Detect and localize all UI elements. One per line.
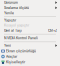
staticText: Sıralama ölçütü	[4, 6, 29, 10]
button[interactable]: NVIDIA Kontrol Paneli	[0, 35, 60, 41]
button[interactable]: Kişiselleştir	[0, 59, 60, 65]
staticText: Geri al Taşı	[4, 29, 22, 33]
staticText: Araçlar	[6, 54, 17, 58]
staticText: Görünüm	[4, 1, 18, 5]
button[interactable]: Yenile	[0, 10, 60, 16]
button[interactable]: Araçlar	[0, 54, 60, 59]
button[interactable]: Sıralama ölçütü	[0, 5, 60, 10]
staticText: Kişiselleştir	[6, 60, 25, 64]
staticText: Yapıştır	[4, 18, 16, 22]
staticText: Ekran çözünürlüğü	[6, 49, 36, 53]
staticText: Kısayol yapıştır	[4, 23, 29, 27]
button[interactable]: Yapıştır	[0, 18, 60, 23]
button[interactable]: Geri al Taşı	[0, 28, 60, 33]
staticText: NVIDIA Kontrol Paneli	[4, 36, 38, 40]
button[interactable]: Kısayol yapıştır	[0, 23, 60, 28]
button[interactable]: Görünüm	[0, 0, 60, 5]
staticText: Yeni	[4, 43, 11, 47]
staticText: Yenile	[4, 11, 14, 15]
button[interactable]: Yeni	[0, 43, 60, 48]
button[interactable]: Ekran çözünürlüğü	[0, 48, 60, 54]
staticText: Ctrl+Z	[48, 29, 57, 33]
